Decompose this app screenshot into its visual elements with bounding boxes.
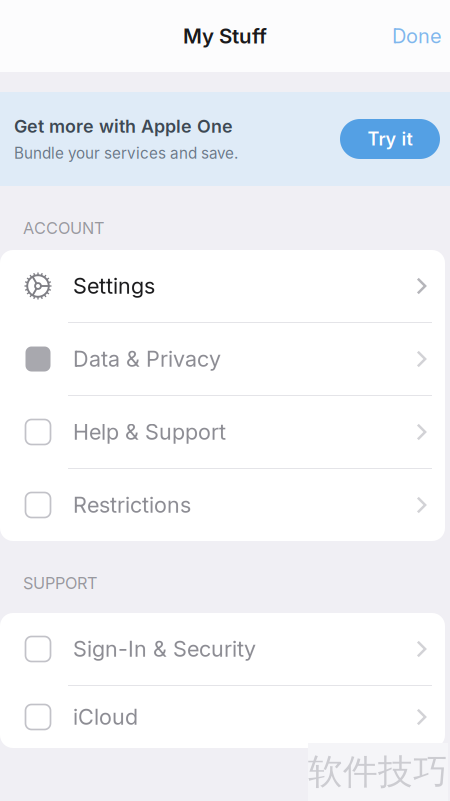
staticText: Data & Privacy <box>73 346 221 372</box>
button[interactable]: Help & Support <box>0 396 445 469</box>
staticText: SUPPORT <box>23 573 98 593</box>
button[interactable]: Try it <box>340 119 440 159</box>
button[interactable]: Sign-In & Security <box>0 613 445 686</box>
staticText: My Stuff <box>183 24 267 48</box>
staticText: iCloud <box>73 704 138 730</box>
button[interactable]: Restrictions <box>0 469 445 541</box>
staticText: Try it <box>367 128 412 150</box>
staticText: Done <box>392 24 442 48</box>
button[interactable]: iCloud <box>0 686 445 748</box>
button[interactable]: Done <box>392 16 450 56</box>
staticText: Settings <box>73 273 155 299</box>
staticText: Restrictions <box>73 492 191 518</box>
staticText: ACCOUNT <box>23 218 105 238</box>
button[interactable]: Data & Privacy <box>0 323 445 396</box>
staticText: Help & Support <box>73 419 226 445</box>
staticText: Get more with Apple One <box>14 115 233 137</box>
staticText: 软件技巧 <box>308 750 448 794</box>
staticText: Sign-In & Security <box>73 636 256 662</box>
staticText: Bundle your services and save. <box>14 144 238 162</box>
button[interactable]: Settings <box>0 250 445 323</box>
